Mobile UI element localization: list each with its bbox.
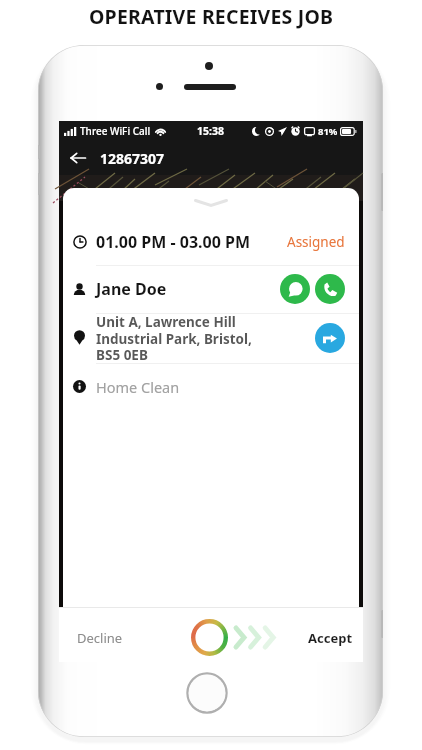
button[interactable]: Slide to accept	[187, 613, 287, 662]
staticText: Accept	[308, 629, 353, 647]
staticText: Three WiFi Call	[80, 124, 151, 138]
staticText: Unit A, Lawrence Hill Industrial Park, B…	[96, 313, 252, 363]
staticText: 01.00 PM - 03.00 PM	[96, 231, 251, 253]
button[interactable]: Back	[65, 145, 91, 171]
button[interactable]: Call	[315, 274, 345, 304]
button[interactable]: 01.00 PM - 03.00 PM	[63, 218, 359, 265]
staticText: Home Clean	[96, 377, 180, 397]
button[interactable]: Accept	[303, 624, 358, 652]
staticText: OPERATIVE RECEIVES JOB	[89, 3, 334, 30]
staticText: Decline	[77, 629, 123, 647]
staticText: Assigned	[287, 233, 345, 251]
button[interactable]: Directions	[315, 323, 345, 353]
staticText: 15:38	[197, 124, 224, 138]
button[interactable]: Home Clean	[63, 363, 359, 410]
staticText: 81%	[318, 125, 338, 138]
button[interactable]: Message	[280, 274, 310, 304]
staticText: Jane Doe	[96, 278, 167, 300]
button[interactable]: Decline	[72, 624, 128, 652]
button[interactable]: Jane Doe	[63, 265, 359, 313]
button[interactable]: Unit A, Lawrence Hill Industrial Park, B…	[63, 313, 359, 363]
staticText: 12867307	[100, 149, 165, 168]
